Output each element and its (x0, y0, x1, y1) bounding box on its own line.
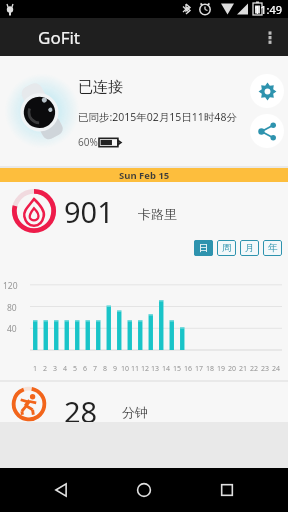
staticText: 月 (245, 242, 255, 254)
staticText: Sun Feb 15 (119, 169, 170, 182)
button[interactable]: 日 (194, 240, 213, 256)
staticText: 60% (78, 135, 98, 149)
staticText: 19 (217, 364, 226, 374)
staticText: 24 (272, 364, 281, 374)
staticText: 15 (173, 364, 182, 374)
button[interactable]: More options (252, 18, 288, 56)
staticText: 17 (195, 364, 204, 374)
staticText: 11:49 (254, 2, 283, 17)
button[interactable]: 年 (263, 240, 282, 256)
staticText: 年 (268, 242, 278, 254)
button[interactable]: 28 (0, 382, 288, 422)
staticText: 20 (228, 364, 237, 374)
staticText: 分钟 (122, 404, 148, 420)
staticText: 22 (250, 364, 259, 374)
staticText: 8 (103, 364, 108, 374)
staticText: 4 (63, 364, 68, 374)
staticText: 7 (93, 364, 98, 374)
button[interactable]: 周 (217, 240, 236, 256)
staticText: 10 (121, 364, 130, 374)
staticText: 28 (64, 392, 98, 422)
button[interactable]: Back (39, 468, 83, 512)
staticText: 16 (184, 364, 193, 374)
staticText: 3 (53, 364, 58, 374)
staticText: 6 (83, 364, 88, 374)
staticText: 901 (64, 192, 114, 231)
staticText: 11 (131, 364, 140, 374)
staticText: 1 (33, 364, 38, 374)
button[interactable]: Home (122, 468, 166, 512)
button[interactable]: 已连接 (0, 56, 288, 166)
staticText: 卡路里 (138, 206, 177, 222)
button[interactable]: Share (250, 114, 284, 148)
button[interactable]: Recent apps (205, 468, 249, 512)
staticText: 已连接 (78, 78, 123, 97)
staticText: 已同步:2015年02月15日11时48分 (78, 110, 237, 124)
staticText: 13 (151, 364, 160, 374)
staticText: 14 (162, 364, 171, 374)
staticText: 18 (206, 364, 215, 374)
staticText: 日 (199, 242, 209, 254)
staticText: 12 (141, 364, 150, 374)
button[interactable]: 月 (240, 240, 259, 256)
staticText: 40 (7, 323, 17, 335)
staticText: GoFit (38, 26, 81, 49)
staticText: 21 (239, 364, 248, 374)
staticText: 5 (73, 364, 78, 374)
button[interactable]: 901 (0, 182, 288, 240)
staticText: 周 (222, 242, 232, 254)
staticText: 23 (261, 364, 270, 374)
staticText: 2 (43, 364, 48, 374)
staticText: 120 (3, 280, 18, 292)
button[interactable]: Settings (250, 74, 284, 108)
staticText: 9 (113, 364, 118, 374)
staticText: 80 (7, 302, 17, 314)
